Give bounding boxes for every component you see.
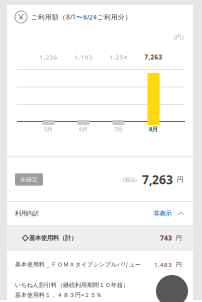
staticText: 7,263 — [142, 171, 173, 188]
staticText: 6月 — [79, 125, 88, 133]
staticText: 7月 — [114, 125, 123, 133]
staticText: 円 — [176, 234, 182, 242]
staticText: いちねん割引料（継続利用期間１０年超） — [15, 281, 129, 289]
staticText: (円) — [174, 33, 184, 41]
staticText: 未確定 — [20, 176, 38, 183]
staticText: 円 — [177, 175, 184, 184]
staticText: (税込) — [123, 176, 137, 183]
staticText: 1,236 — [39, 53, 57, 61]
staticText: 5月 — [44, 125, 53, 133]
staticText: 利用内訳 — [15, 210, 39, 217]
staticText: 743 — [160, 233, 172, 243]
staticText: 1,193 — [74, 53, 92, 61]
staticText: 円 — [176, 261, 182, 268]
button[interactable]: 利用内訳 — [7, 202, 193, 225]
button[interactable]: Menu — [156, 275, 188, 302]
staticText: 8月 — [149, 125, 158, 133]
staticText: 1,254 — [109, 53, 127, 61]
staticText: ご利用額（8/1〜8/24ご利用分） — [31, 12, 132, 22]
staticText: 基本使用料１，４８３円×２５％ — [15, 291, 102, 299]
staticText: 基本使用料＿ＦＯＭＡタイプシンプルバリュー — [15, 261, 141, 268]
staticText: 1,483 — [154, 260, 172, 269]
staticText: 基本使用料（計） — [29, 234, 77, 242]
staticText: 非表示 — [154, 210, 172, 217]
staticText: 7,263 — [144, 53, 162, 61]
